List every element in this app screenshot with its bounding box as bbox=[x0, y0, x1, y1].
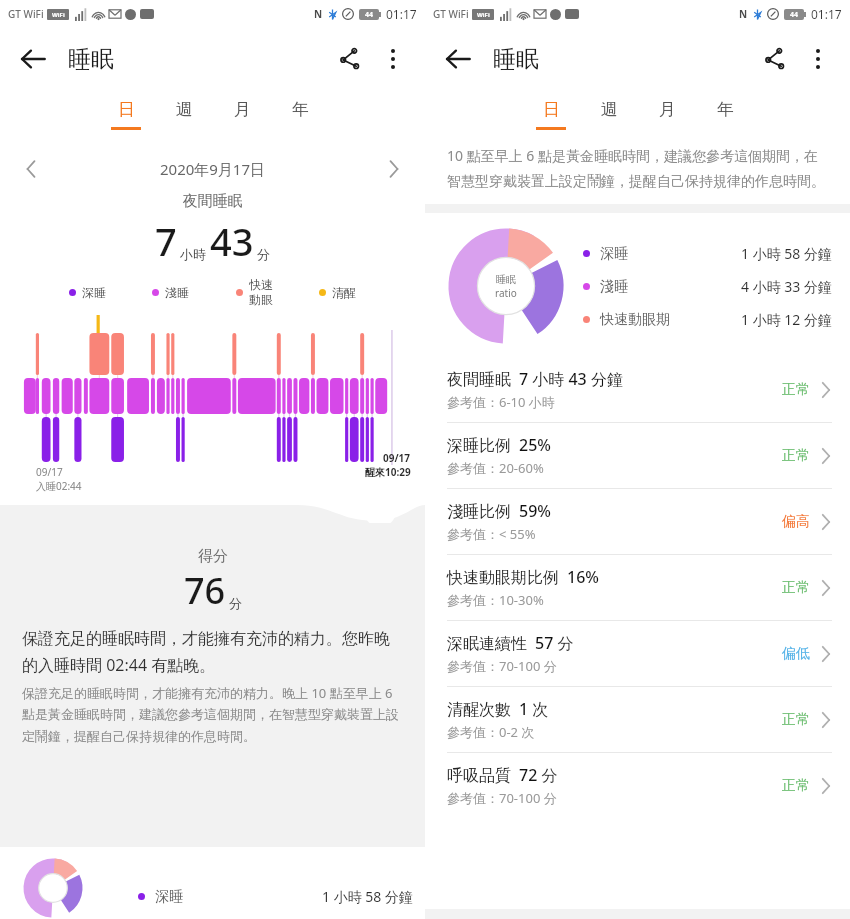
staticText: 參考值：< 55% bbox=[447, 525, 536, 543]
button[interactable]: 日 bbox=[97, 90, 155, 138]
staticText: 日 bbox=[118, 99, 135, 120]
staticText: 快速 bbox=[249, 277, 273, 292]
staticText: 日 bbox=[543, 99, 560, 120]
staticText: 年 bbox=[292, 99, 309, 120]
staticText: 深眠連續性 bbox=[447, 634, 527, 654]
staticText: 正常 bbox=[782, 447, 810, 465]
staticText: 參考值：10-30% bbox=[447, 591, 544, 609]
button[interactable]: More options bbox=[371, 37, 415, 81]
staticText: 7 小時 43 分鐘 bbox=[519, 368, 623, 390]
button[interactable]: 月 bbox=[213, 90, 271, 138]
staticText: N bbox=[314, 7, 323, 21]
staticText: 43 bbox=[210, 215, 254, 267]
button[interactable]: Previous day bbox=[14, 152, 48, 186]
staticText: WiFi bbox=[52, 11, 65, 19]
staticText: 正常 bbox=[782, 579, 810, 597]
staticText: GT WiFi bbox=[8, 7, 44, 21]
staticText: 深睡比例 bbox=[447, 436, 511, 456]
staticText: 夜間睡眠 bbox=[447, 370, 511, 390]
staticText: 57 分 bbox=[535, 632, 574, 654]
staticText: 年 bbox=[717, 99, 734, 120]
staticText: 得分 bbox=[198, 547, 228, 566]
staticText: 正常 bbox=[782, 381, 810, 399]
staticText: 10 點至早上 6 點是黃金睡眠時間，建議您參考這個期間，在智慧型穿戴裝置上設定… bbox=[447, 146, 828, 190]
staticText: 分 bbox=[229, 595, 242, 611]
button[interactable]: 日 bbox=[522, 90, 580, 138]
staticText: 週 bbox=[176, 99, 193, 120]
staticText: 清醒次數 bbox=[447, 700, 511, 720]
staticText: 保證充足的睡眠時間，才能擁有充沛的精力。晚上 10 點至早上 6 點是黃金睡眠時… bbox=[22, 684, 403, 745]
button[interactable]: 週 bbox=[155, 90, 213, 138]
staticText: 72 分 bbox=[519, 764, 558, 786]
button[interactable]: Share bbox=[752, 37, 796, 81]
staticText: 09/17 bbox=[36, 465, 63, 479]
staticText: 1 小時 58 分鐘 bbox=[741, 244, 832, 263]
staticText: 睡眠 bbox=[493, 45, 539, 74]
staticText: 睡眠 bbox=[496, 273, 516, 286]
staticText: 偏低 bbox=[782, 645, 810, 663]
staticText: 動眼 bbox=[249, 292, 273, 307]
staticText: 參考值：70-100 分 bbox=[447, 789, 557, 807]
staticText: 快速動眼期比例 bbox=[447, 568, 559, 588]
staticText: GT WiFi bbox=[433, 7, 469, 21]
button[interactable]: 年 bbox=[696, 90, 754, 138]
staticText: 夜間睡眠 bbox=[0, 192, 425, 211]
staticText: 醒來10:29 bbox=[365, 465, 411, 479]
staticText: 44 bbox=[790, 10, 799, 20]
staticText: 01:17 bbox=[386, 6, 417, 22]
button[interactable]: Back bbox=[437, 38, 479, 80]
staticText: 睡眠 bbox=[68, 45, 114, 74]
staticText: 快速動眼期 bbox=[600, 311, 670, 329]
staticText: 16% bbox=[567, 566, 599, 588]
staticText: 淺睡 bbox=[600, 278, 628, 296]
staticText: 1 次 bbox=[519, 698, 549, 720]
staticText: 正常 bbox=[782, 777, 810, 795]
staticText: 入睡02:44 bbox=[36, 479, 82, 493]
staticText: 76 bbox=[184, 566, 226, 615]
staticText: 09/17 bbox=[383, 451, 411, 465]
staticText: 參考值：0-2 次 bbox=[447, 723, 535, 741]
button[interactable]: 清醒次數 bbox=[425, 687, 850, 752]
staticText: 清醒 bbox=[332, 285, 356, 300]
staticText: 小時 bbox=[180, 246, 206, 262]
button[interactable]: More options bbox=[796, 37, 840, 81]
staticText: N bbox=[739, 7, 748, 21]
staticText: 1 小時 58 分鐘 bbox=[322, 887, 413, 906]
staticText: 參考值：20-60% bbox=[447, 459, 544, 477]
staticText: 深睡 bbox=[155, 888, 183, 906]
staticText: ratio bbox=[495, 286, 517, 300]
staticText: 1 小時 12 分鐘 bbox=[741, 310, 832, 329]
button[interactable]: 快速動眼期比例 bbox=[425, 555, 850, 620]
button[interactable]: Share bbox=[327, 37, 371, 81]
staticText: 深睡 bbox=[600, 245, 628, 263]
button[interactable]: Next day bbox=[377, 152, 411, 186]
staticText: 呼吸品質 bbox=[447, 766, 511, 786]
staticText: 深睡 bbox=[82, 285, 106, 300]
button[interactable]: 淺睡比例 bbox=[425, 489, 850, 554]
staticText: 偏高 bbox=[782, 513, 810, 531]
staticText: 4 小時 33 分鐘 bbox=[741, 277, 832, 296]
staticText: 01:17 bbox=[811, 6, 842, 22]
staticText: 月 bbox=[659, 99, 676, 120]
staticText: 參考值：6-10 小時 bbox=[447, 393, 555, 411]
staticText: 2020年9月17日 bbox=[48, 159, 377, 179]
staticText: 月 bbox=[234, 99, 251, 120]
staticText: 參考值：70-100 分 bbox=[447, 657, 557, 675]
button[interactable]: 年 bbox=[271, 90, 329, 138]
staticText: 淺睡比例 bbox=[447, 502, 511, 522]
button[interactable]: 呼吸品質 bbox=[425, 753, 850, 818]
button[interactable]: 月 bbox=[638, 90, 696, 138]
staticText: 44 bbox=[365, 10, 374, 20]
button[interactable]: 週 bbox=[580, 90, 638, 138]
staticText: 59% bbox=[519, 500, 551, 522]
button[interactable]: 深眠連續性 bbox=[425, 621, 850, 686]
button[interactable]: 夜間睡眠 bbox=[425, 357, 850, 422]
button[interactable]: Back bbox=[12, 38, 54, 80]
staticText: 分 bbox=[257, 246, 270, 262]
staticText: 保證充足的睡眠時間，才能擁有充沛的精力。您昨晚的入睡時間 02:44 有點晚。 bbox=[22, 629, 403, 676]
staticText: 25% bbox=[519, 434, 551, 456]
staticText: 7 bbox=[155, 215, 177, 267]
staticText: 週 bbox=[601, 99, 618, 120]
button[interactable]: 深睡比例 bbox=[425, 423, 850, 488]
staticText: 正常 bbox=[782, 711, 810, 729]
